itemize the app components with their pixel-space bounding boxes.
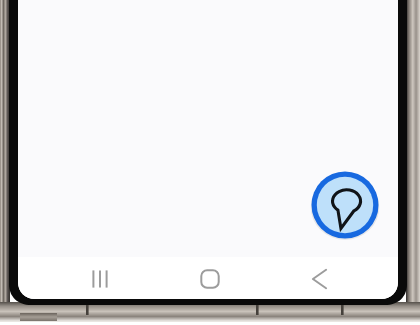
button[interactable]: Recents: [70, 259, 130, 299]
button[interactable]: Home: [180, 259, 240, 299]
button[interactable]: New chat: [310, 170, 380, 240]
button[interactable]: Back: [288, 259, 348, 299]
